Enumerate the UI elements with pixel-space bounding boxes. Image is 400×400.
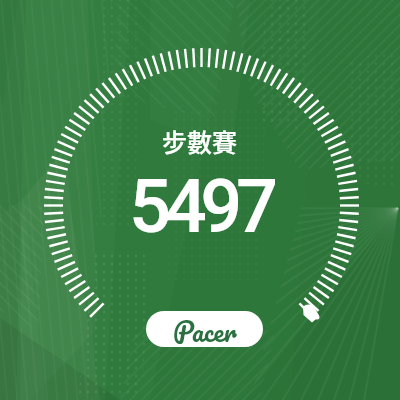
staticText: 5497	[129, 163, 272, 250]
staticText: 步數賽	[162, 123, 238, 159]
button[interactable]: Pacer	[146, 311, 263, 347]
staticText: Pacer	[173, 311, 237, 344]
